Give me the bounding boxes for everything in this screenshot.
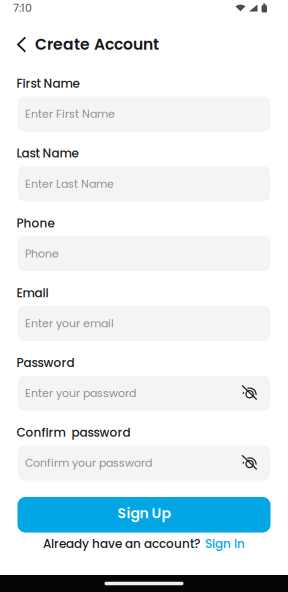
button[interactable]: Phone — [18, 236, 270, 271]
staticText: Sign Up — [117, 503, 170, 523]
staticText: Enter your password — [25, 385, 136, 401]
staticText: Already have an account? — [43, 535, 200, 552]
staticText: Password — [16, 354, 74, 371]
button[interactable]: Back — [17, 37, 26, 52]
staticText: Email — [16, 285, 48, 301]
button[interactable]: Enter First Name — [18, 96, 270, 131]
button[interactable]: Sign Up — [17, 497, 270, 532]
staticText: First Name — [16, 75, 79, 92]
staticText: Phone — [16, 215, 54, 232]
button[interactable]: Show password — [242, 385, 258, 401]
staticText: 7:10 — [13, 0, 32, 16]
staticText: Enter Last Name — [25, 176, 114, 191]
staticText: Enter your email — [25, 316, 114, 331]
staticText: Confirm password — [16, 424, 130, 441]
staticText: Confirm your password — [25, 455, 152, 471]
button[interactable]: Enter Last Name — [18, 166, 270, 201]
button[interactable]: Sign In — [205, 535, 245, 552]
button[interactable]: Show password — [242, 455, 258, 471]
staticText: Enter First Name — [25, 106, 115, 122]
button[interactable]: Enter your password — [18, 376, 270, 411]
staticText: Phone — [25, 246, 59, 261]
button[interactable]: Enter your email — [18, 306, 270, 341]
staticText: Sign In — [205, 535, 245, 552]
button[interactable]: Confirm your password — [18, 445, 270, 480]
staticText: Create Account — [35, 33, 159, 55]
staticText: Last Name — [16, 145, 78, 162]
